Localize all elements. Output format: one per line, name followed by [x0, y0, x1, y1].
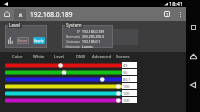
button[interactable]: Scenes — [112, 52, 133, 61]
staticText: 80.1 — [123, 77, 131, 82]
button[interactable]: Channel level — [5, 77, 122, 82]
staticText: Apply — [34, 38, 44, 43]
button[interactable]: Tabs — [160, 7, 174, 21]
button[interactable]: Channel level — [5, 98, 122, 103]
staticText: White — [33, 54, 45, 60]
staticText: Hostname — [64, 44, 80, 48]
staticText: 56 — [123, 70, 128, 75]
button[interactable]: 80.1 — [122, 76, 137, 82]
staticText: 192.168.0.189 — [30, 10, 73, 19]
button[interactable]: Home — [0, 7, 14, 21]
button[interactable]: Fader — [8, 37, 13, 44]
button[interactable]: Reset — [17, 37, 29, 44]
staticText: 100 — [123, 91, 130, 96]
button[interactable]: 100 — [122, 90, 137, 96]
button[interactable]: Apply — [33, 37, 45, 44]
staticText: 100 — [123, 98, 130, 103]
button[interactable]: Channel level — [5, 70, 122, 75]
button[interactable]: Recents — [186, 20, 200, 34]
button[interactable]: Home — [186, 49, 200, 63]
button[interactable]: 49 — [122, 62, 137, 68]
button[interactable]: Channel level — [5, 84, 122, 89]
button[interactable]: Channel level — [5, 91, 122, 96]
staticText: Level — [54, 54, 65, 60]
button[interactable]: DMX — [70, 52, 91, 61]
staticText: Lumos — [82, 44, 93, 48]
staticText: Scenes — [116, 54, 130, 60]
staticText: 18:41 — [169, 0, 184, 7]
staticText: Level — [9, 22, 21, 28]
staticText: 192.168.0.1 — [82, 39, 101, 43]
staticText: Advanced — [92, 54, 112, 60]
staticText: 100 — [123, 84, 130, 89]
staticText: 255.255.255.0 — [82, 34, 105, 38]
button[interactable]: White — [28, 52, 49, 61]
button[interactable]: 100 — [122, 97, 137, 103]
button[interactable]: Site information — [14, 9, 26, 20]
staticText: IP address — [64, 29, 80, 33]
button[interactable]: More options — [174, 7, 186, 21]
staticText: DMX — [76, 54, 86, 60]
staticText: System — [66, 22, 82, 28]
staticText: 49 — [123, 63, 128, 68]
button[interactable]: Back — [186, 78, 200, 92]
button[interactable]: Channel level — [5, 63, 122, 68]
staticText: 192.168.0.189 — [82, 29, 105, 33]
button[interactable]: 56 — [122, 69, 137, 75]
button[interactable]: Level — [49, 52, 70, 61]
button[interactable]: 100 — [122, 83, 137, 89]
staticText: Color — [12, 54, 23, 60]
staticText: Netmask — [64, 34, 80, 38]
staticText: Gateway — [64, 39, 80, 43]
staticText: 1 — [166, 12, 169, 17]
button[interactable]: Advanced — [91, 52, 112, 61]
staticText: Reset — [18, 38, 28, 43]
button[interactable]: Color — [7, 52, 28, 61]
